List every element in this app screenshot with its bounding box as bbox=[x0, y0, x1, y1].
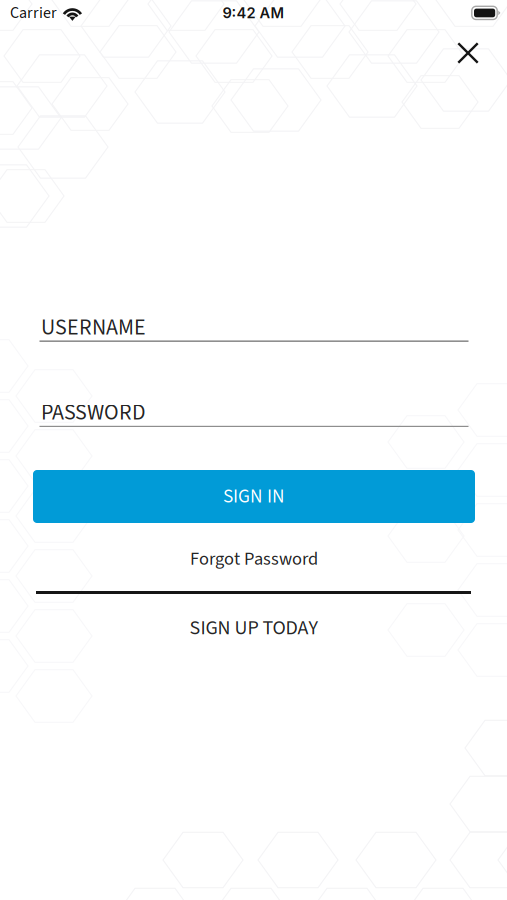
staticText: PASSWORD bbox=[41, 397, 146, 428]
button[interactable]: SIGN IN bbox=[33, 470, 475, 523]
staticText: SIGN UP TODAY bbox=[189, 614, 318, 642]
staticText: SIGN IN bbox=[223, 483, 285, 510]
staticText: Carrier bbox=[10, 2, 57, 24]
staticText: 9:42 AM bbox=[222, 4, 284, 22]
button[interactable]: Close bbox=[446, 31, 490, 75]
staticText: Forgot Password bbox=[190, 546, 318, 572]
button[interactable]: Forgot Password bbox=[33, 543, 475, 575]
staticText: USERNAME bbox=[41, 312, 146, 343]
button[interactable]: SIGN UP TODAY bbox=[33, 612, 475, 644]
